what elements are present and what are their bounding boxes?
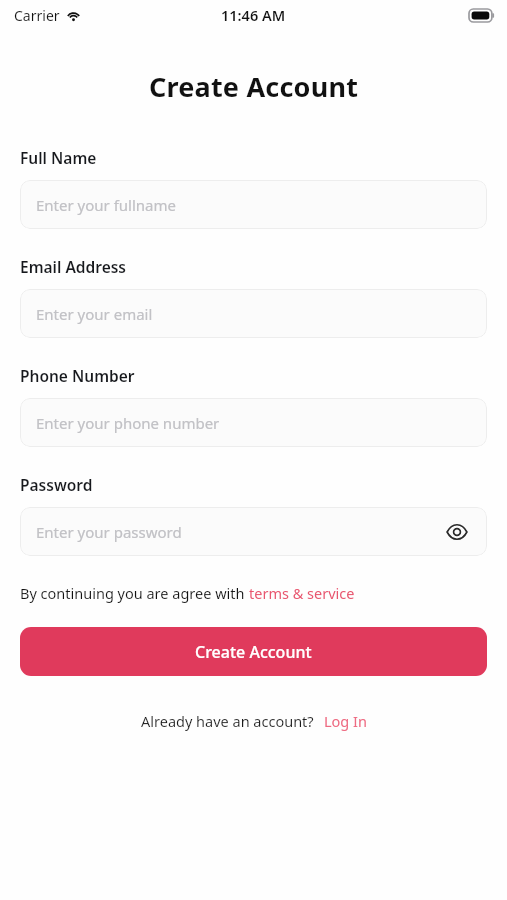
- staticText: By continuing you are agree with: [20, 583, 249, 603]
- staticText: Enter your fullname: [36, 195, 177, 215]
- staticText: 11:46 AM: [221, 5, 286, 25]
- staticText: terms & service: [249, 583, 355, 603]
- staticText: Full Name: [20, 147, 97, 168]
- staticText: Enter your password: [36, 522, 182, 542]
- button[interactable]: Enter your phone number: [20, 398, 487, 447]
- staticText: Enter your email: [36, 304, 153, 324]
- button[interactable]: terms & service: [249, 583, 355, 603]
- button[interactable]: Enter your fullname: [20, 180, 487, 229]
- staticText: Email Address: [20, 256, 126, 277]
- staticText: Carrier: [14, 6, 60, 25]
- button[interactable]: Enter your password: [20, 507, 487, 556]
- staticText: Phone Number: [20, 365, 135, 386]
- staticText: Password: [20, 474, 93, 495]
- staticText: Log In: [324, 711, 367, 731]
- button[interactable]: Log In: [324, 711, 367, 731]
- button[interactable]: Enter your email: [20, 289, 487, 338]
- button[interactable]: Create Account: [20, 627, 487, 676]
- staticText: Create Account: [149, 68, 359, 105]
- staticText: Create Account: [195, 641, 312, 663]
- staticText: Already have an account?: [141, 711, 314, 731]
- button[interactable]: Show password: [443, 518, 471, 546]
- staticText: Enter your phone number: [36, 413, 220, 433]
